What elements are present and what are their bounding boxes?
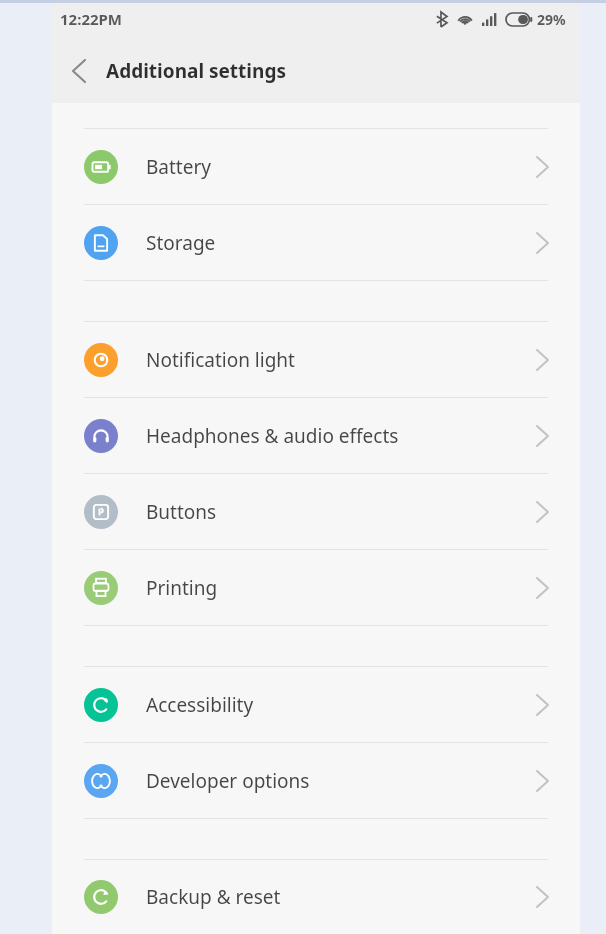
button[interactable]: Headphones & audio effects <box>52 398 580 473</box>
staticText: Accessibility <box>146 692 254 718</box>
staticText: Developer options <box>146 768 310 794</box>
staticText: Printing <box>146 575 218 601</box>
staticText: Buttons <box>146 499 217 525</box>
button[interactable]: Printing <box>52 550 580 625</box>
staticText: 12:22PM <box>60 9 122 29</box>
button[interactable]: Accessibility <box>52 667 580 742</box>
staticText: Additional settings <box>106 58 286 84</box>
button[interactable]: Notification light <box>52 322 580 397</box>
button[interactable]: Developer options <box>52 743 580 818</box>
staticText: Battery <box>146 154 211 180</box>
button[interactable]: Buttons <box>52 474 580 549</box>
staticText: Headphones & audio effects <box>146 423 399 449</box>
button[interactable]: Storage <box>52 205 580 280</box>
button[interactable]: Battery <box>52 129 580 204</box>
staticText: Notification light <box>146 347 295 373</box>
button[interactable]: Back <box>52 44 106 98</box>
staticText: 29% <box>537 10 566 29</box>
staticText: Storage <box>146 230 216 256</box>
staticText: Backup & reset <box>146 884 281 910</box>
button[interactable]: Backup & reset <box>52 860 580 934</box>
